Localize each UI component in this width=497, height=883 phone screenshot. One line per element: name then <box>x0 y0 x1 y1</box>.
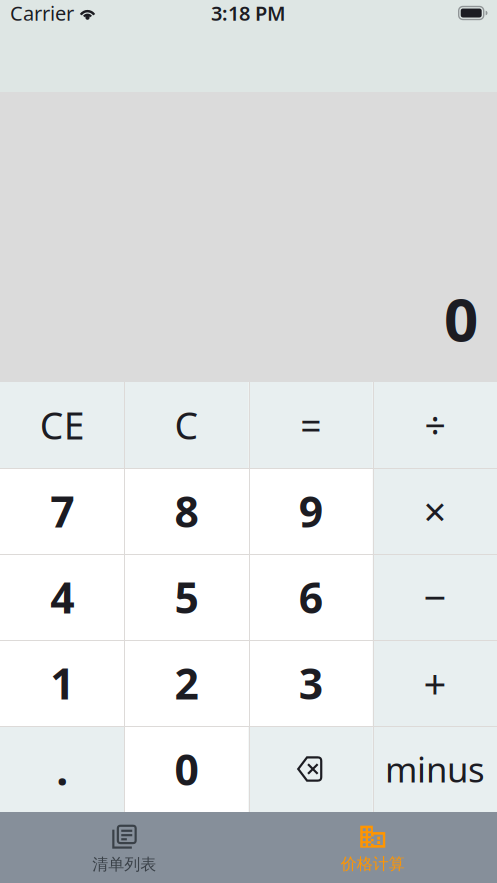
staticText: 7 <box>50 483 74 539</box>
button[interactable]: 5 <box>124 554 248 640</box>
staticText: + <box>423 656 446 709</box>
staticText: 5 <box>174 569 198 625</box>
button[interactable]: 1 <box>0 640 124 726</box>
button[interactable]: 3 <box>248 640 373 726</box>
button[interactable]: − <box>373 554 497 640</box>
button[interactable]: 价格计算 <box>248 813 497 881</box>
staticText: 1 <box>50 655 74 711</box>
button[interactable]: 6 <box>248 554 373 640</box>
staticText: 8 <box>174 483 198 539</box>
button[interactable]: CE <box>0 382 124 468</box>
staticText: 清单列表 <box>92 855 156 874</box>
staticText: × <box>423 484 446 537</box>
staticText: 0 <box>174 741 198 797</box>
staticText: 6 <box>299 569 323 625</box>
staticText: 9 <box>299 483 323 539</box>
staticText: . <box>56 741 68 797</box>
staticText: Carrier <box>10 0 74 26</box>
button[interactable]: = <box>248 382 373 468</box>
staticText: CE <box>40 400 85 450</box>
button[interactable]: C <box>124 382 248 468</box>
staticText: 3 <box>299 655 323 711</box>
button[interactable]: 9 <box>248 468 373 554</box>
button[interactable]: 清单列表 <box>0 813 248 881</box>
button[interactable]: ÷ <box>373 382 497 468</box>
button[interactable]: 8 <box>124 468 248 554</box>
staticText: ÷ <box>424 400 445 450</box>
staticText: 2 <box>174 655 198 711</box>
staticText: 3:18 PM <box>211 0 286 26</box>
staticText: 价格计算 <box>341 854 405 874</box>
staticText: C <box>174 400 198 450</box>
button[interactable]: 0 <box>124 726 248 812</box>
staticText: − <box>423 570 446 623</box>
button[interactable]: + <box>373 640 497 726</box>
staticText: 0 <box>444 278 478 358</box>
button[interactable]: minus <box>373 726 497 812</box>
button[interactable]: 7 <box>0 468 124 554</box>
staticText: 4 <box>50 569 74 625</box>
button[interactable]: 4 <box>0 554 124 640</box>
staticText: minus <box>385 746 485 792</box>
button[interactable]: 2 <box>124 640 248 726</box>
button[interactable]: Delete <box>248 726 373 812</box>
button[interactable]: × <box>373 468 497 554</box>
staticText: = <box>300 400 321 450</box>
button[interactable]: . <box>0 726 124 812</box>
